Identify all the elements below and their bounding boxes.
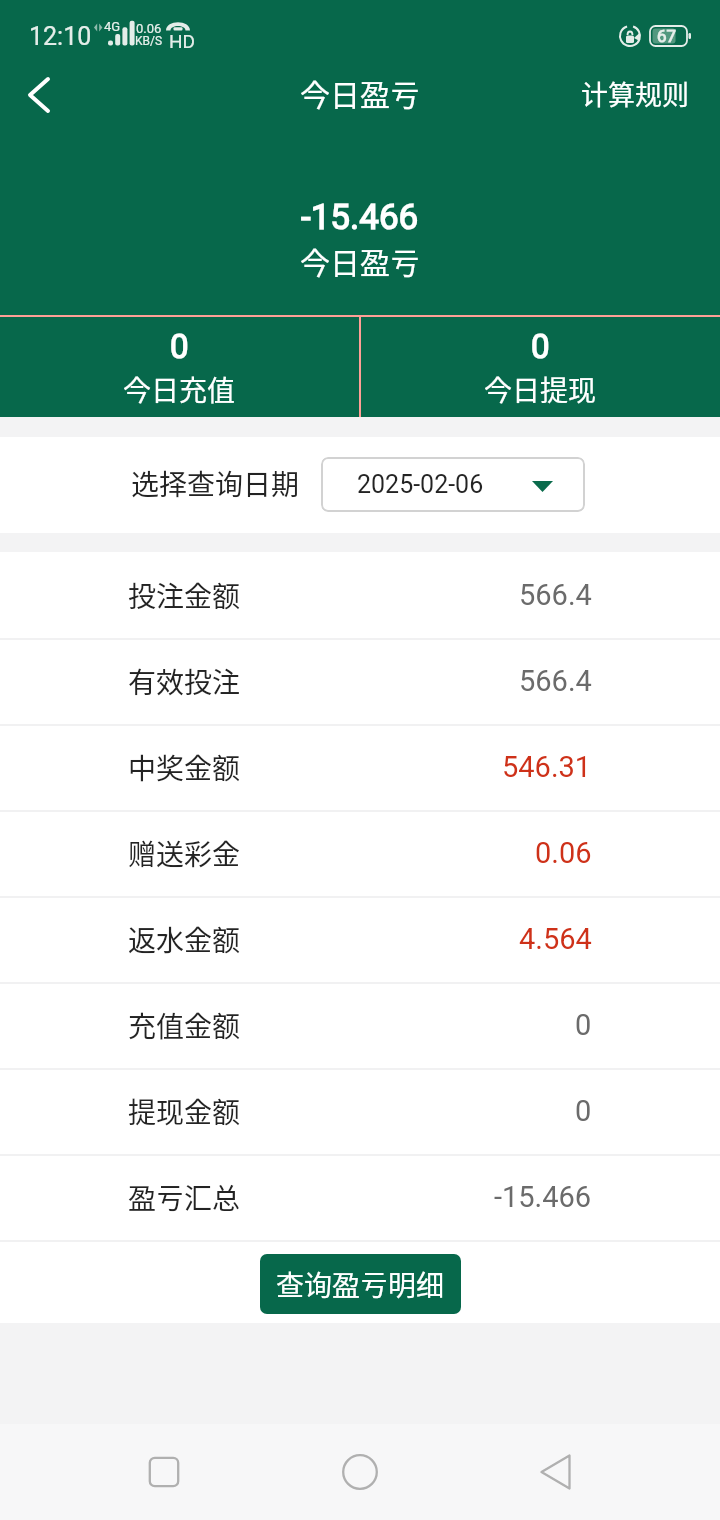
staticText: -15.466 xyxy=(301,197,419,238)
button[interactable]: Back xyxy=(515,1432,595,1512)
staticText: 0 xyxy=(575,1094,592,1128)
button[interactable]: 查询盈亏明细 xyxy=(260,1254,461,1314)
button[interactable]: 返水金额 xyxy=(0,896,720,982)
staticText: 赠送彩金 xyxy=(128,833,241,874)
button[interactable]: Recents xyxy=(124,1432,204,1512)
staticText: 566.4 xyxy=(519,578,592,612)
staticText: 0.06 xyxy=(535,836,592,870)
staticText: 566.4 xyxy=(519,664,592,698)
button[interactable]: 有效投注 xyxy=(0,638,720,724)
staticText: 返水金额 xyxy=(128,919,241,960)
staticText: 充值金额 xyxy=(128,1005,241,1046)
staticText: 今日盈亏 xyxy=(300,71,420,114)
button[interactable]: 0 xyxy=(361,317,720,417)
staticText: 0 xyxy=(170,327,189,366)
staticText: 今日盈亏 xyxy=(300,239,420,282)
staticText: HD xyxy=(169,30,196,52)
staticText: -15.466 xyxy=(494,1180,592,1214)
button[interactable]: 赠送彩金 xyxy=(0,810,720,896)
button[interactable]: 中奖金额 xyxy=(0,724,720,810)
button[interactable]: 投注金额 xyxy=(0,552,720,638)
staticText: 投注金额 xyxy=(128,575,241,616)
button[interactable]: Back xyxy=(4,55,74,135)
staticText: 选择查询日期 xyxy=(131,463,300,504)
button[interactable]: Home xyxy=(320,1432,400,1512)
button[interactable]: 盈亏汇总 xyxy=(0,1154,720,1240)
button[interactable]: 充值金额 xyxy=(0,982,720,1068)
staticText: 盈亏汇总 xyxy=(128,1177,241,1218)
staticText: 0 xyxy=(575,1008,592,1042)
staticText: 0.06 xyxy=(136,21,162,36)
staticText: 4.564 xyxy=(519,922,592,956)
staticText: 有效投注 xyxy=(128,661,241,702)
button[interactable]: 2025-02-06 xyxy=(321,457,585,512)
staticText: KB/S xyxy=(135,34,163,48)
button[interactable]: 提现金额 xyxy=(0,1068,720,1154)
staticText: 今日充值 xyxy=(123,369,236,410)
staticText: 今日提现 xyxy=(484,369,597,410)
staticText: 546.31 xyxy=(502,750,592,784)
staticText: 计算规则 xyxy=(581,74,689,113)
button[interactable]: 计算规则 xyxy=(557,64,720,127)
staticText: 0 xyxy=(531,327,550,366)
button[interactable]: 0 xyxy=(0,317,359,417)
staticText: 提现金额 xyxy=(128,1091,241,1132)
staticText: 2025-02-06 xyxy=(357,470,484,499)
staticText: 67 xyxy=(657,26,677,46)
staticText: 查询盈亏明细 xyxy=(276,1264,445,1305)
staticText: 12:10 xyxy=(29,22,92,51)
staticText: 中奖金额 xyxy=(128,747,241,788)
staticText: 4G xyxy=(104,19,121,34)
